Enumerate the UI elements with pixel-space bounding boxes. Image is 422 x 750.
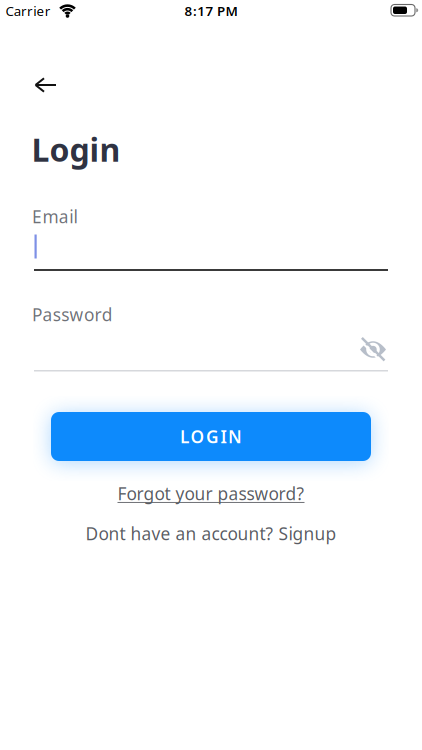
- staticText: Email: [32, 205, 78, 228]
- button[interactable]: LOGIN: [51, 412, 371, 461]
- staticText: Forgot your password?: [117, 482, 304, 505]
- button[interactable]: [28, 70, 72, 102]
- staticText: Dont have an account? Signup: [85, 522, 336, 545]
- staticText: Password: [32, 303, 113, 326]
- button[interactable]: [358, 334, 388, 364]
- staticText: 8:17 PM: [185, 2, 237, 20]
- staticText: Login: [31, 128, 120, 170]
- button[interactable]: Dont have an account? Signup: [0, 522, 422, 545]
- button[interactable]: Forgot your password?: [0, 482, 422, 505]
- staticText: Carrier: [5, 2, 51, 20]
- staticText: LOGIN: [180, 425, 242, 448]
